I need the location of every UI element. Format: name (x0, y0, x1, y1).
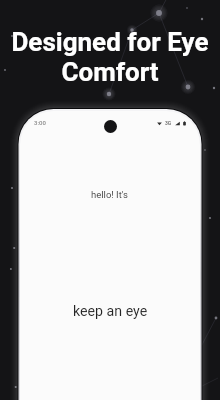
staticText: hello! It's (91, 189, 128, 200)
staticText: 3G (165, 120, 172, 126)
button[interactable]: Status: wifi, 3G, signal, battery (157, 120, 186, 126)
other: Front camera (104, 120, 117, 133)
staticText: keep an eye (73, 303, 148, 320)
staticText: 3:00 (34, 119, 46, 126)
button[interactable]: keep an eye (73, 303, 148, 320)
staticText: Designed for Eye Comfort (11, 27, 209, 87)
button[interactable]: hello! It's (91, 189, 128, 200)
